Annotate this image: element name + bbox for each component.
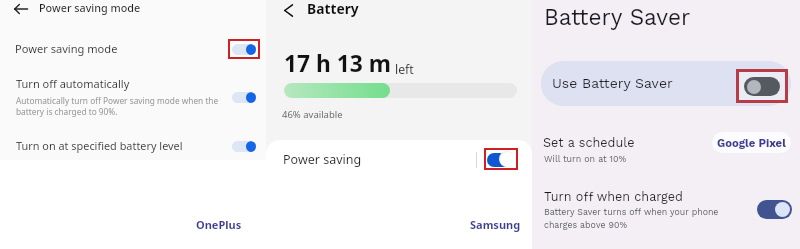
button[interactable]: Turn off when charged — [532, 186, 800, 234]
staticText: Will turn on at 10% — [544, 154, 627, 164]
button[interactable]: Toggle — [232, 44, 256, 55]
button[interactable]: Toggle — [232, 92, 256, 103]
button[interactable]: Back — [266, 0, 532, 22]
staticText: Power saving mode — [15, 41, 118, 56]
button[interactable]: Power saving toggle — [487, 151, 515, 167]
staticText: Power saving — [283, 151, 362, 168]
staticText: Use Battery Saver — [552, 75, 673, 91]
staticText: Power saving mode — [39, 0, 141, 15]
staticText: Set a schedule — [543, 135, 635, 150]
staticText: OnePlus — [196, 217, 242, 232]
button[interactable]: Google Pixel — [712, 132, 791, 153]
staticText: Google Pixel — [717, 136, 786, 149]
button[interactable]: Turn on at specified battery level — [0, 134, 266, 160]
staticText: Turn off automatically — [16, 76, 130, 91]
staticText: Battery Saver — [544, 4, 691, 31]
staticText: Battery Saver turns off when your phone … — [544, 207, 722, 230]
button[interactable]: Back — [0, 0, 266, 22]
button[interactable]: Use Battery Saver — [541, 61, 791, 106]
staticText: left — [395, 61, 414, 78]
staticText: Automatically turn off Power saving mode… — [16, 95, 241, 117]
button[interactable]: Toggle — [232, 141, 256, 152]
button[interactable]: Turn off when charged toggle — [757, 200, 792, 219]
staticText: Turn off when charged — [544, 189, 683, 204]
staticText: Turn on at specified battery level — [16, 138, 183, 153]
staticText: Battery — [307, 0, 359, 18]
staticText: 46% available — [282, 108, 343, 121]
button[interactable]: Power saving — [266, 140, 532, 178]
button[interactable]: Power saving mode — [0, 36, 266, 64]
staticText: Samsung — [470, 217, 521, 232]
button[interactable]: Set a schedule — [532, 128, 800, 170]
button[interactable]: Turn off automatically — [0, 74, 266, 122]
button[interactable]: Use Battery Saver toggle — [744, 77, 780, 96]
staticText: 17 h 13 m — [284, 48, 391, 79]
